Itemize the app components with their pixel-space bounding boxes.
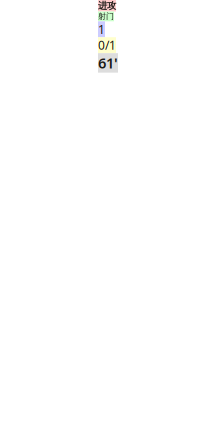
staticText: 61' [98,53,118,73]
staticText: 1 [98,21,105,37]
staticText: 进攻 [98,0,116,11]
staticText: 射门 [98,11,114,21]
staticText: 0/1 [98,37,116,53]
